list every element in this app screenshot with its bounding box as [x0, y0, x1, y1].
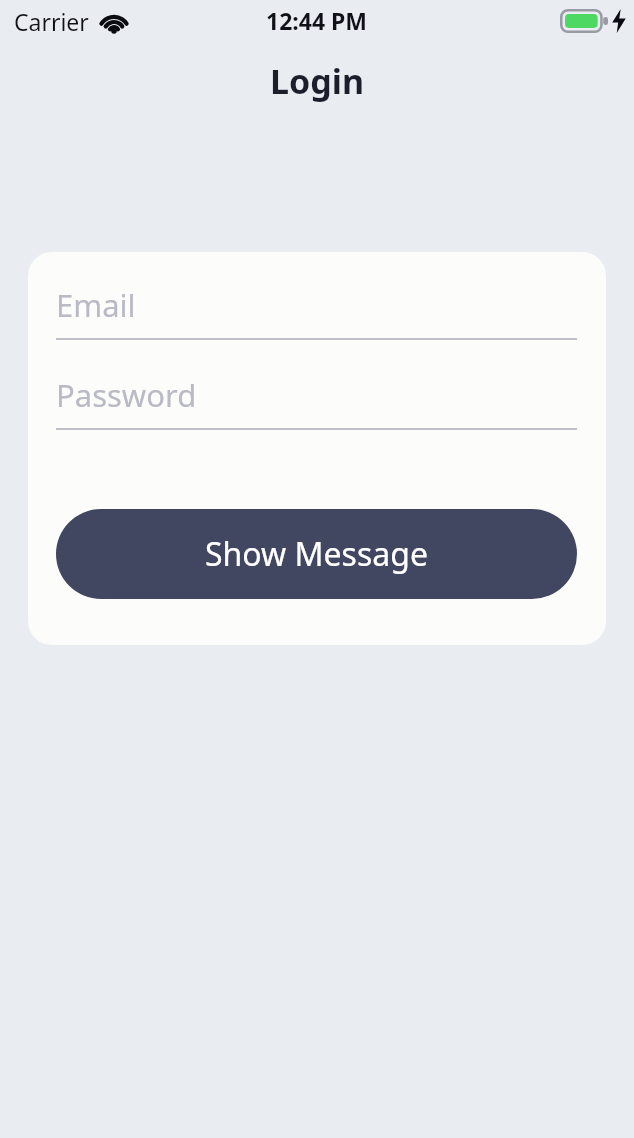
button[interactable]: Show Message — [56, 509, 577, 599]
staticText: Show Message — [205, 532, 428, 576]
button[interactable]: Email — [56, 284, 577, 340]
button[interactable]: Password — [56, 374, 577, 430]
other: Battery full — [560, 9, 608, 33]
staticText: Carrier — [14, 6, 89, 37]
staticText: Password — [56, 374, 197, 416]
staticText: Login — [0, 58, 634, 104]
other: Charging — [612, 9, 626, 33]
other: Wi-Fi signal — [99, 11, 129, 33]
staticText: Email — [56, 284, 136, 326]
staticText: 12:44 PM — [266, 5, 368, 36]
